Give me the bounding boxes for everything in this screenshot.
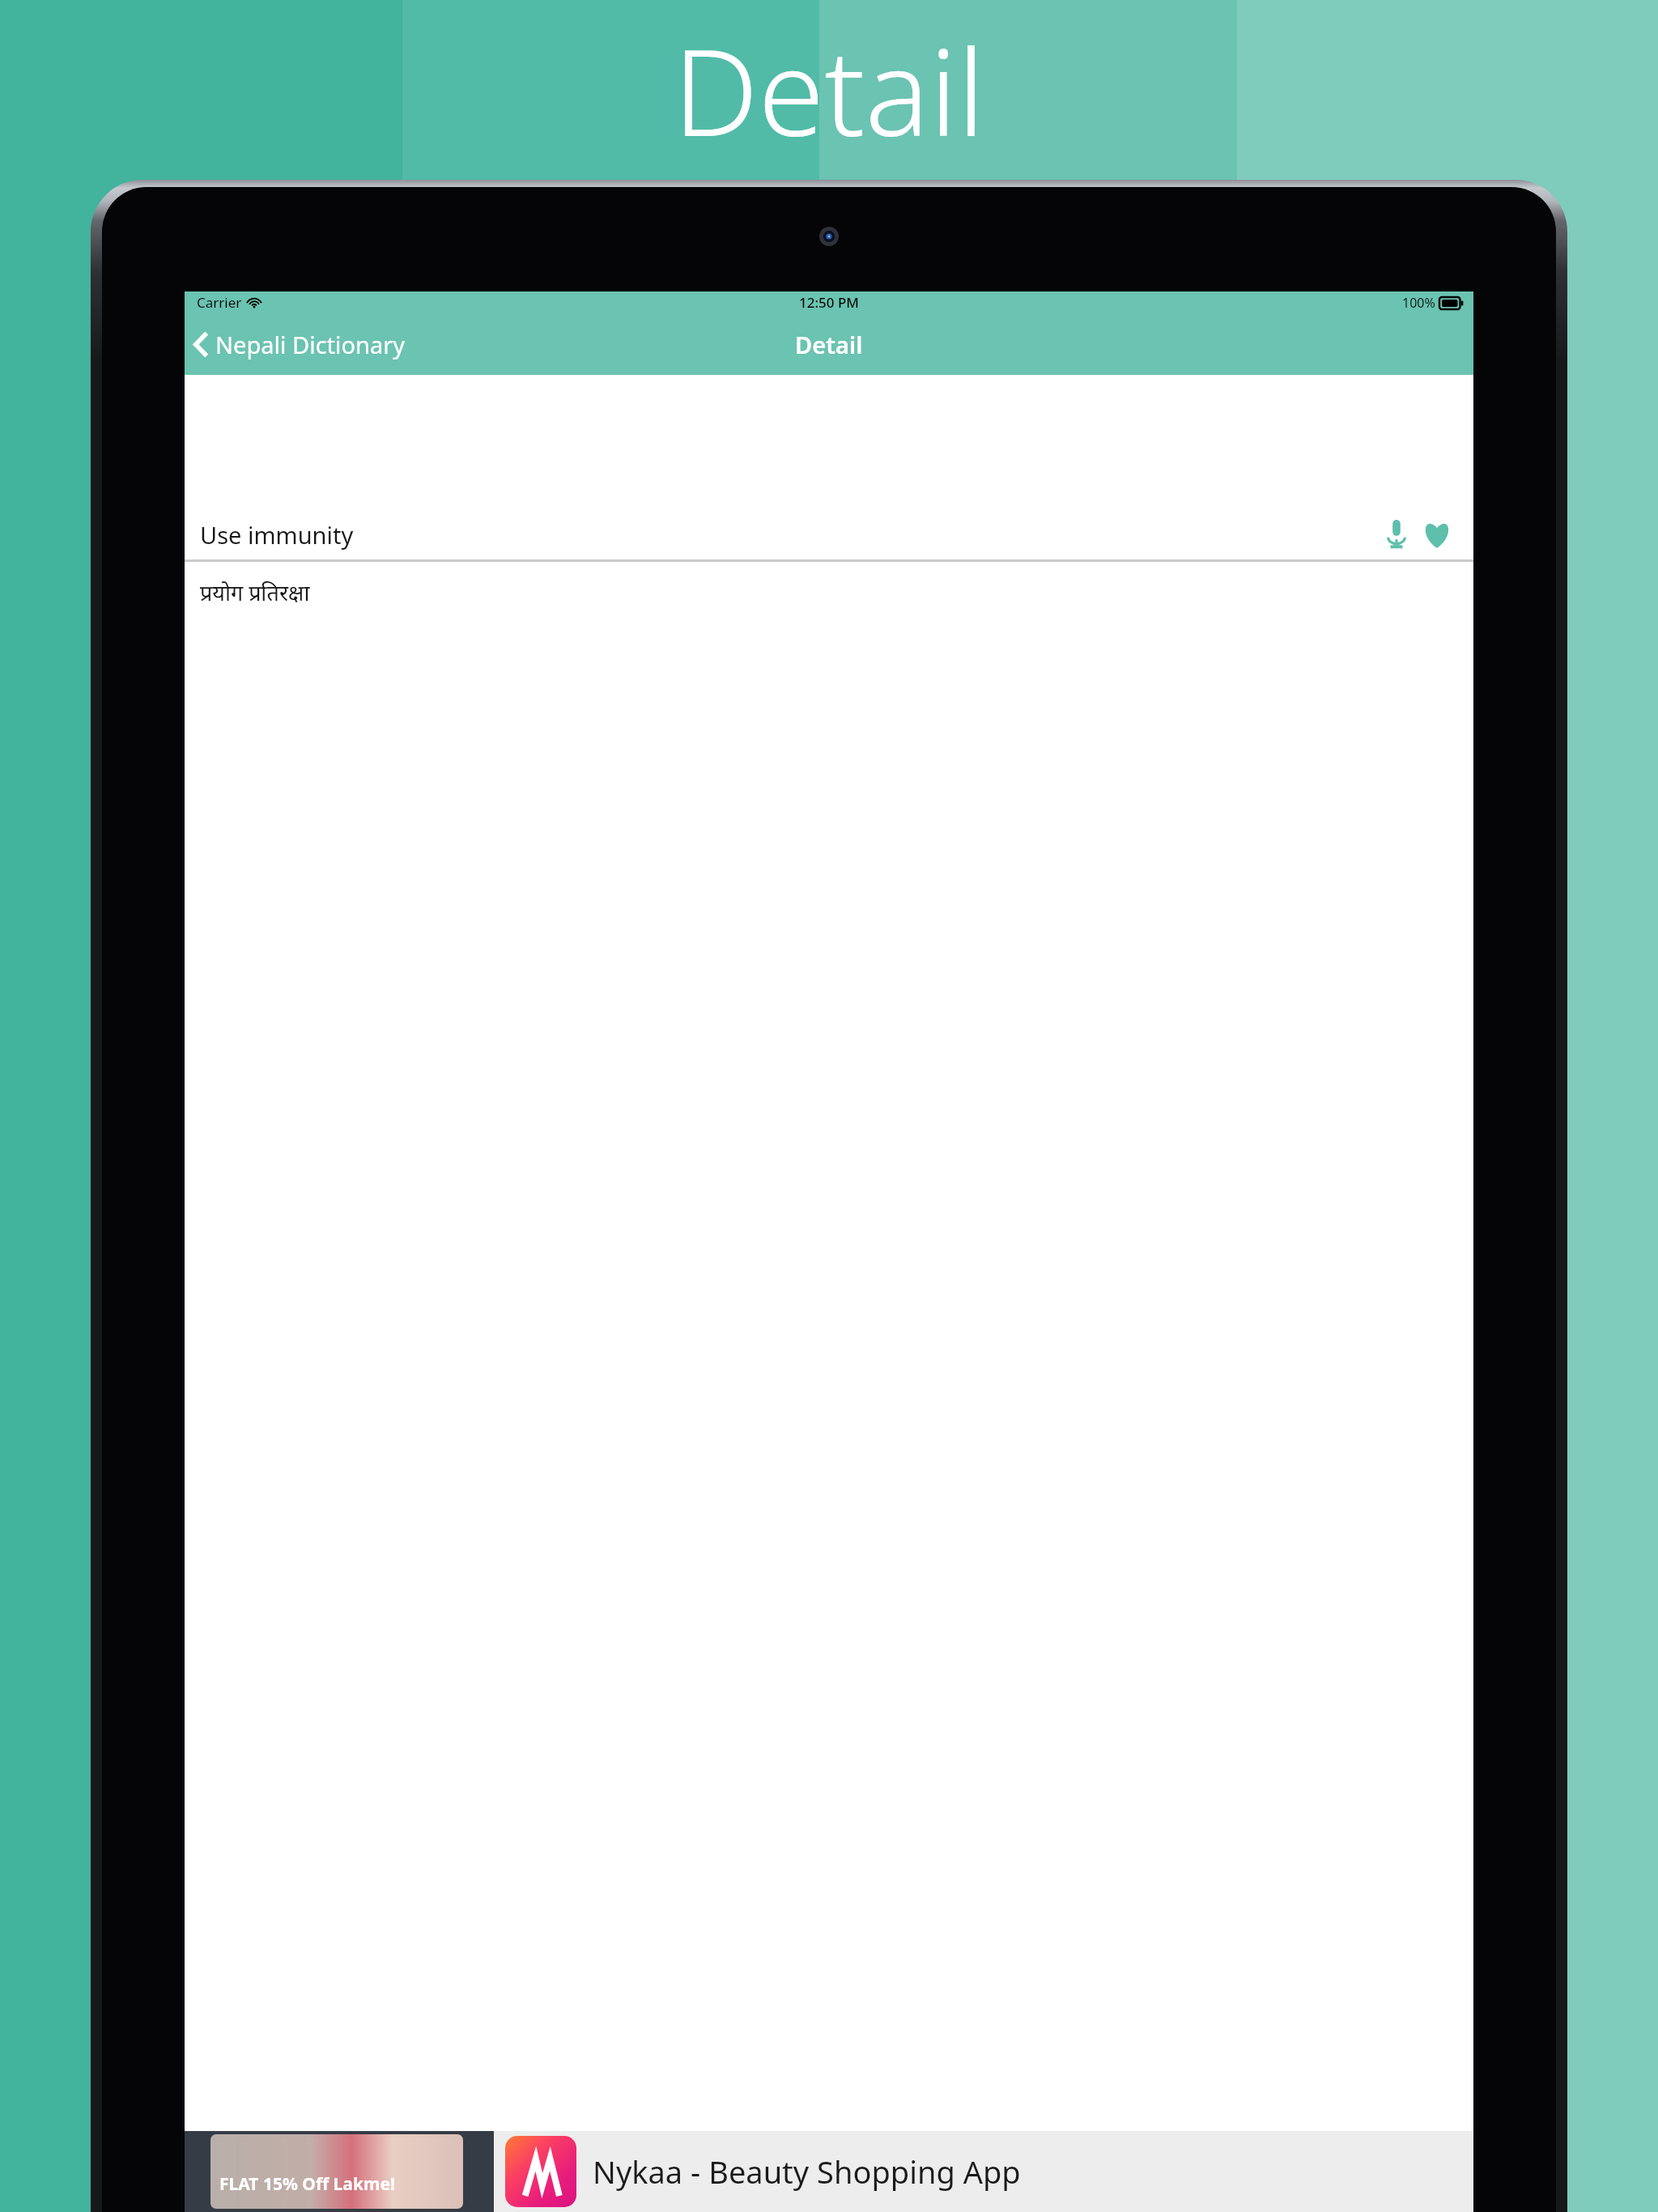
staticText: 100%	[1402, 294, 1435, 312]
button[interactable]: FLAT 15% Off Lakme!	[185, 2131, 1473, 2212]
staticText: 12:50 PM	[799, 293, 859, 312]
button[interactable]: Favorite	[1418, 516, 1456, 553]
staticText: Carrier	[197, 293, 242, 312]
button[interactable]: Pronounce	[1378, 516, 1415, 553]
staticText: Use immunity	[200, 519, 354, 551]
staticText: FLAT 15% Off Lakme!	[219, 2172, 395, 2196]
staticText: Detail	[795, 329, 863, 360]
staticText: Detail	[673, 8, 985, 172]
staticText: Nykaa - Beauty Shopping App	[593, 2150, 1021, 2193]
button[interactable]: Nepali Dictionary	[185, 320, 415, 368]
staticText: Nepali Dictionary	[215, 329, 406, 360]
staticText: प्रयोग प्रतिरक्षा	[200, 577, 310, 607]
